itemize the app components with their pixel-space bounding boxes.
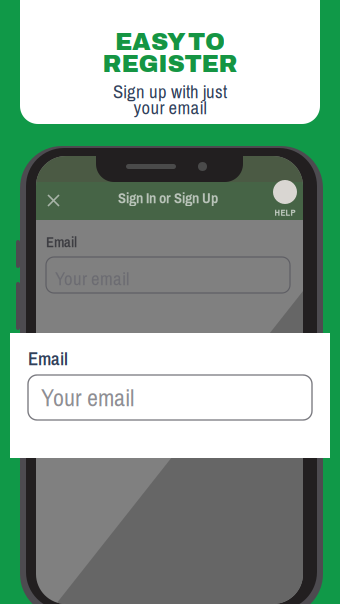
staticText: your email — [133, 95, 206, 120]
staticText: Sign In or Sign Up — [118, 188, 218, 208]
staticText: HELP — [274, 206, 295, 219]
button[interactable]: Help — [270, 180, 300, 218]
button[interactable]: Close — [40, 187, 66, 213]
staticText: EASY TO — [115, 29, 225, 55]
staticText: Email — [46, 232, 77, 252]
staticText: Your email — [41, 381, 134, 414]
staticText: Email — [28, 346, 68, 371]
staticText: Sign up with just — [113, 79, 227, 104]
staticText: Your email — [55, 266, 129, 291]
button[interactable]: Your email — [28, 375, 312, 420]
staticText: REGISTER — [102, 51, 237, 77]
